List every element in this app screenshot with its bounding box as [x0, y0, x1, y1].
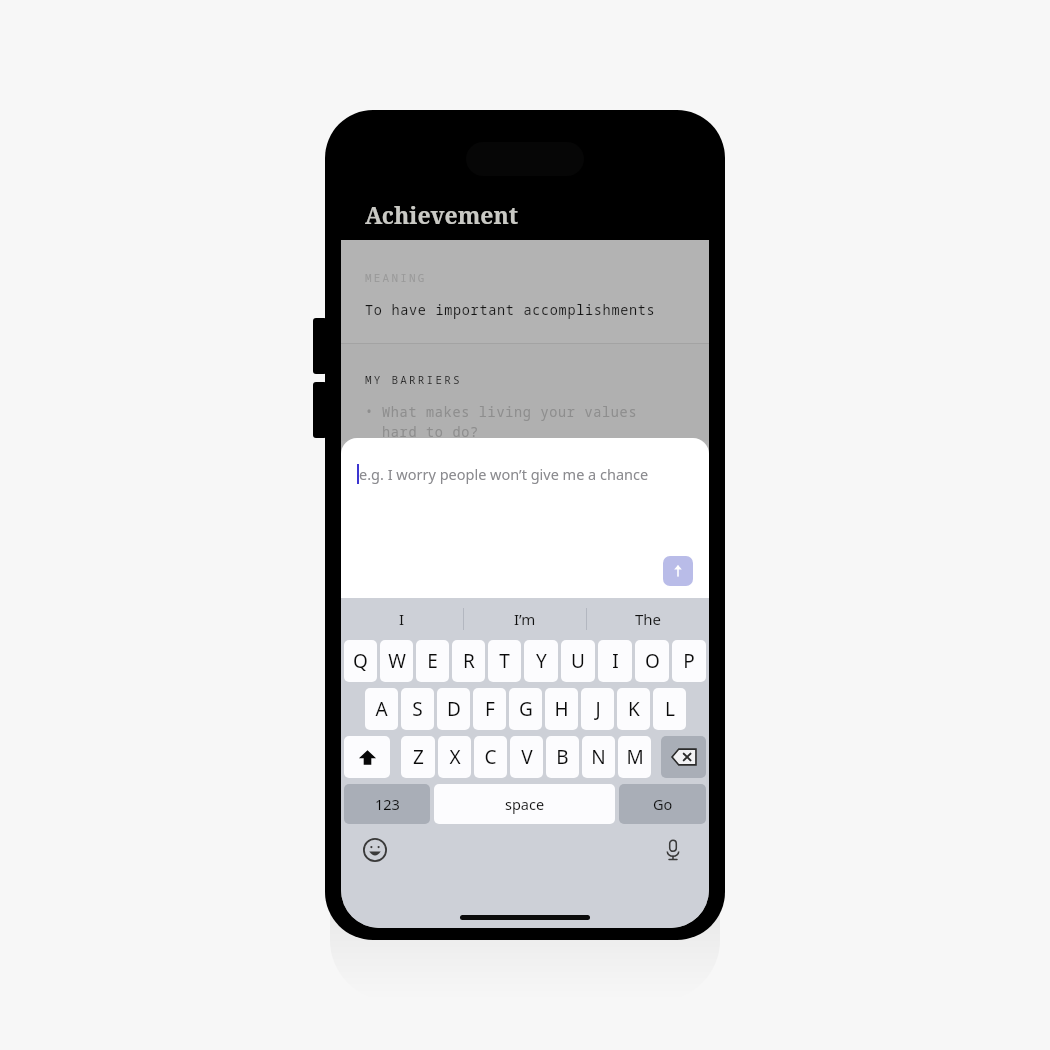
button[interactable]: U: [561, 640, 595, 682]
button[interactable]: L: [653, 688, 686, 730]
staticText: V: [521, 744, 533, 770]
staticText: Z: [413, 744, 424, 770]
button[interactable]: Dictate: [657, 834, 689, 866]
staticText: The: [635, 609, 662, 629]
button[interactable]: C: [474, 736, 507, 778]
button[interactable]: The: [587, 598, 709, 640]
button[interactable]: H: [545, 688, 578, 730]
staticText: I: [612, 648, 619, 674]
button[interactable]: 123: [344, 784, 430, 824]
staticText: A: [375, 696, 388, 722]
staticText: L: [665, 696, 675, 722]
staticText: To have important accomplishments: [365, 301, 656, 319]
staticText: Q: [353, 648, 368, 674]
staticText: E: [427, 648, 438, 674]
staticText: •: [365, 403, 382, 421]
staticText: What makes living your values hard to do…: [382, 403, 638, 441]
staticText: H: [554, 696, 569, 722]
staticText: S: [412, 696, 423, 722]
button[interactable]: E: [416, 640, 449, 682]
button[interactable]: X: [438, 736, 471, 778]
staticText: I’m: [514, 609, 536, 629]
button[interactable]: Shift: [344, 736, 390, 778]
button[interactable]: Send: [663, 556, 693, 586]
button[interactable]: Backspace: [661, 736, 706, 778]
staticText: J: [595, 696, 601, 722]
button[interactable]: D: [437, 688, 470, 730]
staticText: space: [505, 794, 545, 814]
staticText: K: [628, 696, 640, 722]
staticText: e.g. I worry people won’t give me a chan…: [359, 464, 649, 484]
button[interactable]: Y: [524, 640, 558, 682]
staticText: U: [571, 648, 585, 674]
staticText: M: [626, 744, 644, 770]
button[interactable]: A: [365, 688, 398, 730]
staticText: MEANING: [365, 270, 427, 285]
staticText: MY BARRIERS: [365, 372, 462, 387]
staticText: R: [463, 648, 475, 674]
staticText: P: [683, 648, 695, 674]
button[interactable]: O: [635, 640, 669, 682]
button[interactable]: M: [618, 736, 651, 778]
staticText: O: [645, 648, 660, 674]
staticText: X: [449, 744, 461, 770]
button[interactable]: e.g. I worry people won’t give me a chan…: [341, 438, 709, 598]
button[interactable]: W: [380, 640, 413, 682]
staticText: F: [485, 696, 495, 722]
button[interactable]: I: [598, 640, 632, 682]
staticText: W: [388, 648, 406, 674]
button[interactable]: F: [473, 688, 506, 730]
button[interactable]: space: [434, 784, 615, 824]
staticText: 123: [375, 794, 400, 814]
button[interactable]: I’m: [464, 598, 586, 640]
button[interactable]: S: [401, 688, 434, 730]
staticText: I: [399, 609, 405, 629]
button[interactable]: K: [617, 688, 650, 730]
button[interactable]: Q: [344, 640, 377, 682]
button[interactable]: T: [488, 640, 521, 682]
staticText: G: [519, 696, 533, 722]
button[interactable]: R: [452, 640, 485, 682]
staticText: D: [447, 696, 461, 722]
button[interactable]: Emoji: [359, 834, 391, 866]
button[interactable]: I: [341, 598, 463, 640]
button[interactable]: Go: [619, 784, 706, 824]
staticText: Go: [653, 794, 673, 814]
staticText: B: [556, 744, 569, 770]
button[interactable]: Z: [401, 736, 435, 778]
staticText: T: [499, 648, 510, 674]
button[interactable]: P: [672, 640, 706, 682]
staticText: Y: [536, 648, 547, 674]
button[interactable]: B: [546, 736, 579, 778]
staticText: C: [484, 744, 497, 770]
button[interactable]: N: [582, 736, 615, 778]
button[interactable]: G: [509, 688, 542, 730]
staticText: N: [591, 744, 606, 770]
staticText: Achievement: [365, 199, 519, 230]
button[interactable]: V: [510, 736, 543, 778]
button[interactable]: J: [581, 688, 614, 730]
